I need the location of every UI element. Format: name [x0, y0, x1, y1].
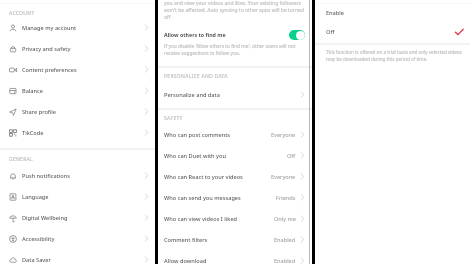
staticText: Privacy and safety — [22, 45, 71, 53]
staticText: PERSONALIZE AND DATA — [164, 73, 228, 80]
button[interactable]: Digital Wellbeing — [0, 207, 155, 228]
button[interactable]: Push notifications — [0, 165, 155, 186]
staticText: Who can send you messages — [164, 194, 241, 202]
staticText: Only me — [274, 215, 296, 223]
button[interactable]: Language — [0, 186, 155, 207]
staticText: Friends — [276, 194, 296, 202]
staticText: Who can Duet with you — [164, 152, 226, 160]
staticText: Digital Wellbeing — [22, 214, 68, 222]
staticText: Push notifications — [22, 172, 70, 180]
button[interactable]: Comment filters — [158, 229, 313, 250]
staticText: Personalize and data — [164, 91, 220, 99]
staticText: Who can post comments — [164, 131, 231, 139]
staticText: Who can React to your videos — [164, 173, 243, 181]
staticText: Allow others to find me — [164, 31, 226, 38]
staticText: Who can view videos I liked — [164, 215, 238, 223]
staticText: GENERAL — [9, 156, 34, 163]
staticText: Off — [326, 28, 335, 36]
staticText: Share profile — [22, 108, 57, 116]
button[interactable]: Off — [315, 21, 470, 43]
button[interactable]: Who can view videos I liked — [158, 208, 313, 229]
button[interactable]: Accessibility — [0, 228, 155, 249]
staticText: Data Saver — [22, 256, 51, 264]
button[interactable]: Data Saver — [0, 249, 155, 264]
button[interactable]: Who can send you messages — [158, 187, 313, 208]
staticText: Balance — [22, 87, 44, 95]
button[interactable]: TikCode — [0, 122, 155, 143]
staticText: Content preferences — [22, 66, 77, 74]
button[interactable]: Who can Duet with you — [158, 145, 313, 166]
button[interactable]: Who can post comments — [158, 124, 313, 145]
staticText: Accessibility — [22, 235, 55, 243]
button[interactable]: Allow others to find me — [158, 28, 313, 41]
button[interactable]: Privacy and safety — [0, 38, 155, 59]
staticText: If you disable 'Allow others to find me'… — [164, 43, 303, 57]
button[interactable]: Manage my account — [0, 17, 155, 38]
staticText: Everyone — [271, 173, 296, 181]
button[interactable]: Content preferences — [0, 59, 155, 80]
button[interactable]: Share profile — [0, 101, 155, 122]
staticText: Off — [287, 152, 296, 160]
staticText: Everyone — [271, 131, 296, 139]
staticText: TikCode — [22, 129, 44, 137]
staticText: Language — [22, 193, 49, 201]
staticText: Enable — [326, 9, 345, 17]
staticText: SAFETY — [164, 115, 183, 122]
button[interactable]: Personalize and data — [158, 85, 313, 104]
staticText: you and view your videos and likes. Your… — [164, 0, 309, 21]
staticText: Allow download — [164, 257, 207, 264]
staticText: ACCOUNT — [9, 10, 35, 17]
button[interactable]: Balance — [0, 80, 155, 101]
staticText: Manage my account — [22, 24, 77, 32]
staticText: Enabled — [274, 257, 296, 264]
other: Selected — [454, 27, 464, 37]
staticText: Comment filters — [164, 236, 208, 244]
button[interactable]: Allow download — [158, 250, 313, 264]
staticText: This function is offered on a trial basi… — [326, 49, 467, 62]
staticText: Enabled — [274, 236, 296, 244]
button[interactable]: Enable — [315, 5, 470, 21]
button[interactable]: Who can React to your videos — [158, 166, 313, 187]
button[interactable]: Allow others to find me toggle — [289, 30, 305, 40]
